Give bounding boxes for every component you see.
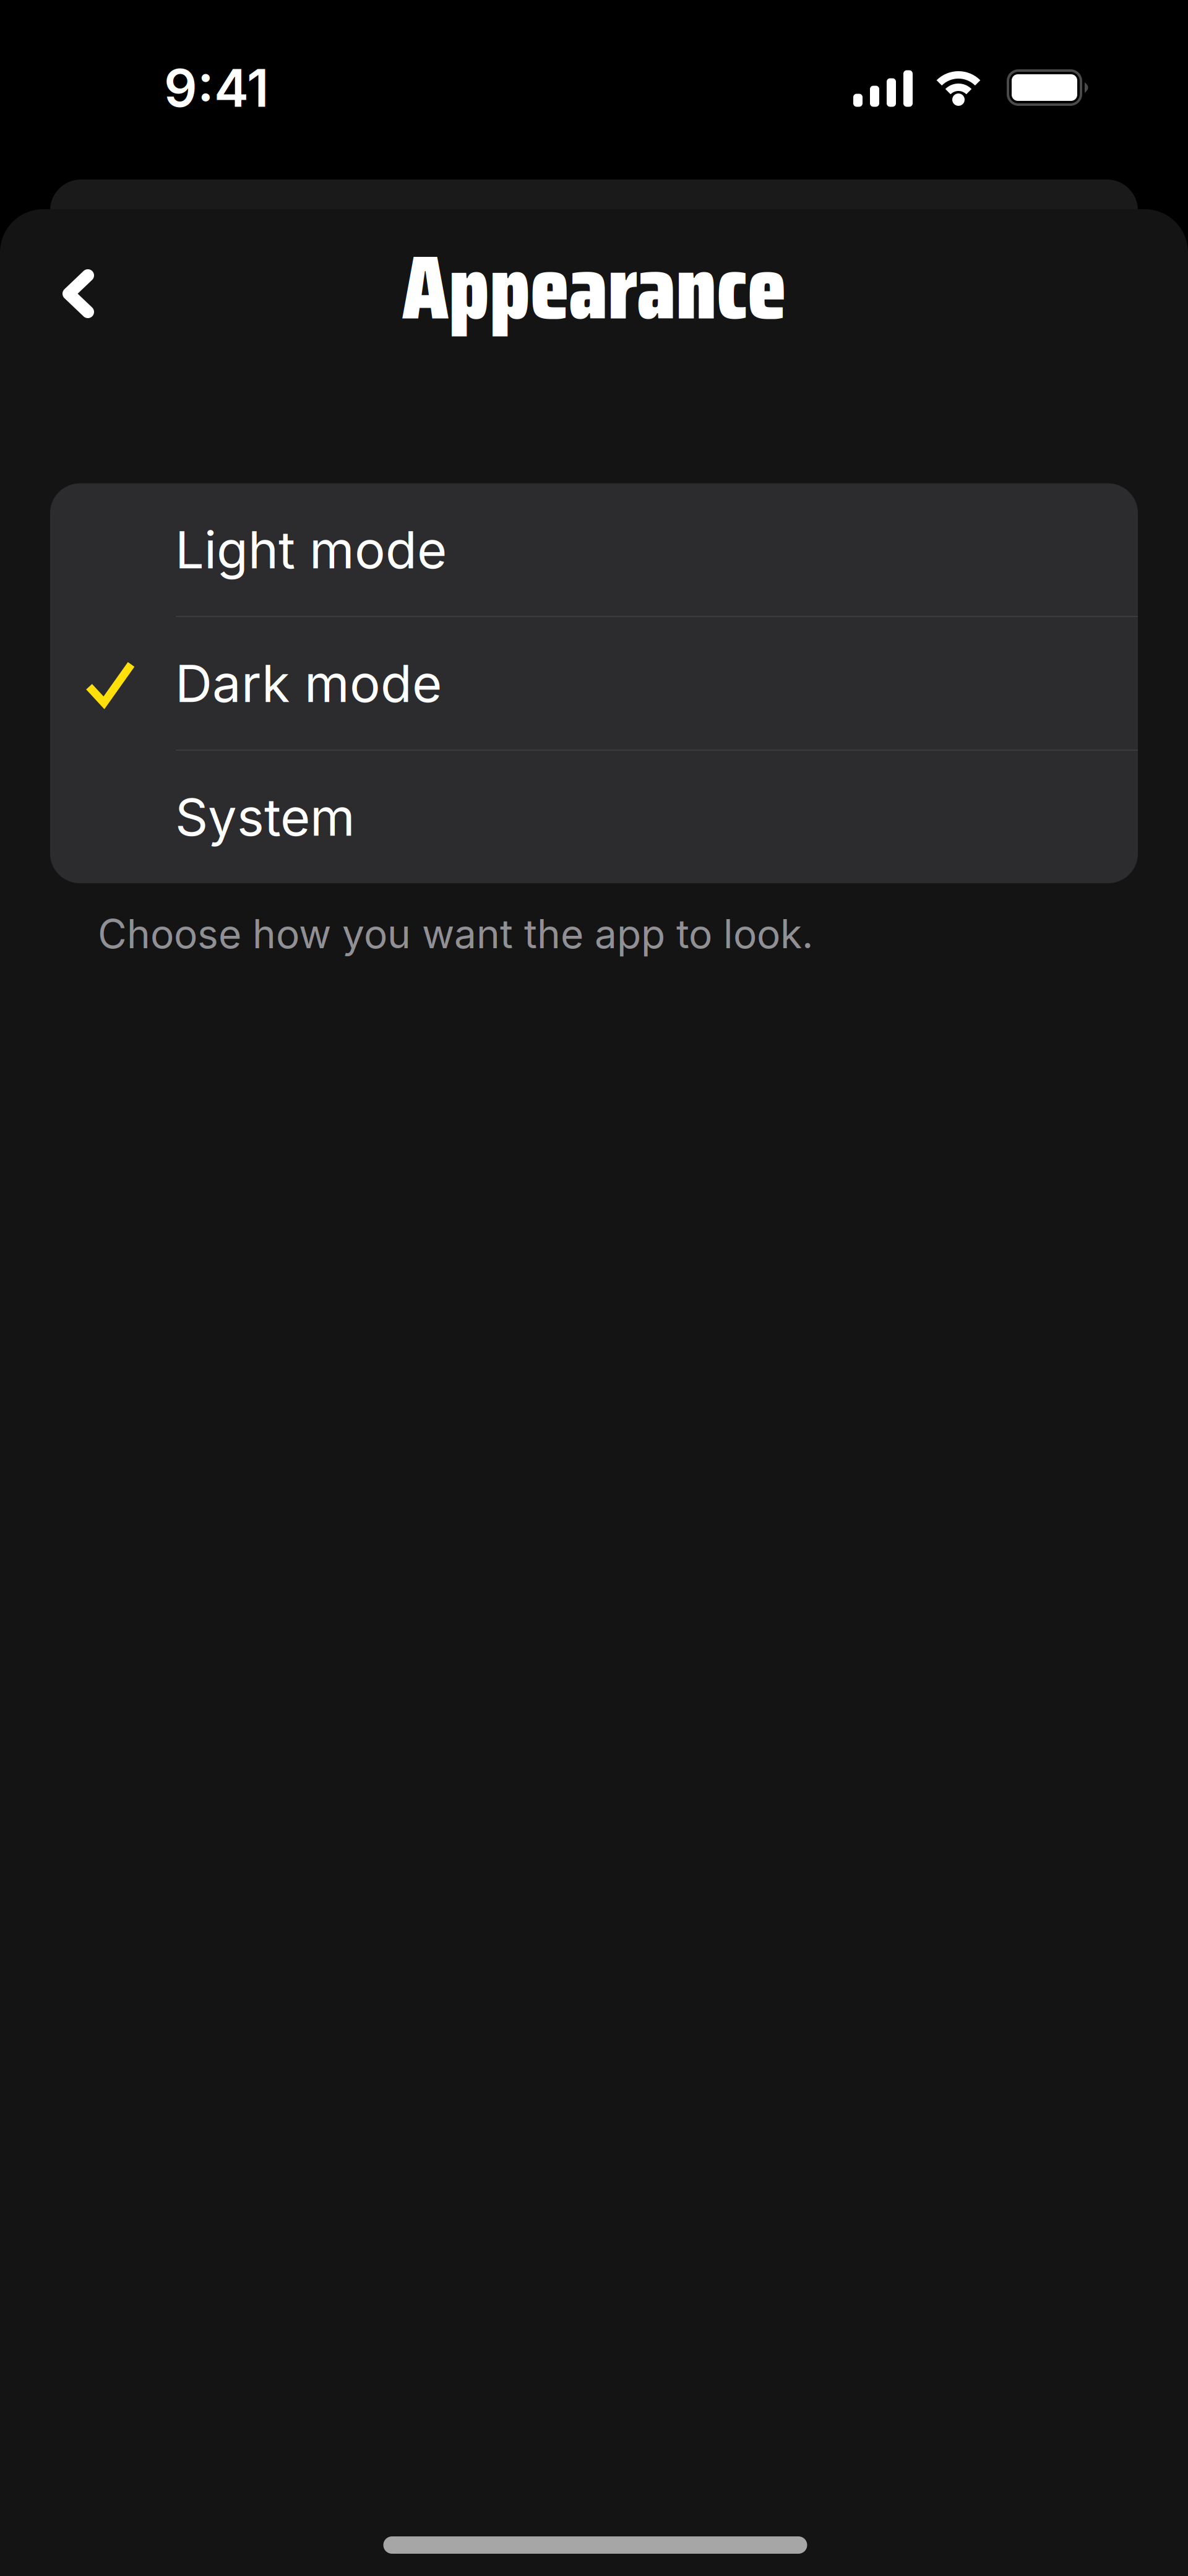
staticText: Light mode [175, 519, 447, 581]
button[interactable]: Dark mode [50, 617, 1138, 750]
staticText: System [175, 786, 355, 848]
button[interactable]: Light mode [50, 483, 1138, 616]
staticText: Dark mode [175, 652, 442, 714]
staticText: Appearance [402, 217, 786, 358]
button[interactable]: Back [32, 251, 123, 336]
button[interactable]: System [50, 751, 1138, 883]
staticText: Choose how you want the app to look. [98, 910, 813, 958]
staticText: 9:41 [164, 56, 269, 119]
